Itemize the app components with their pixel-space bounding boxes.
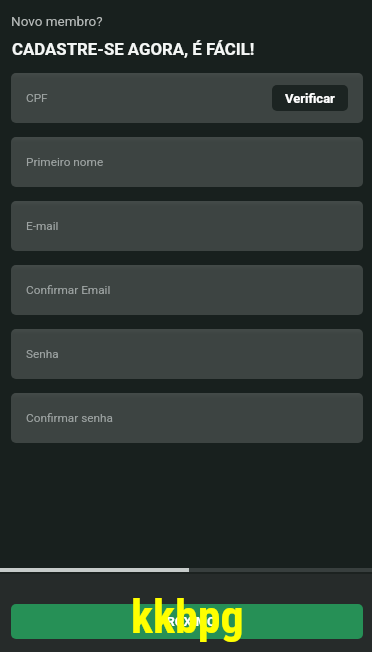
staticText: PRÓXIMO [158, 614, 216, 629]
staticText: CADASTRE-SE AGORA, É FÁCIL! [12, 39, 255, 59]
button[interactable]: Verificar [272, 85, 348, 111]
button[interactable]: PRÓXIMO [11, 604, 363, 639]
button[interactable]: E-mail [11, 201, 363, 251]
button[interactable]: Confirmar Email [11, 265, 363, 315]
button[interactable]: CPF [11, 73, 363, 123]
staticText: Primeiro nome [26, 155, 104, 169]
button[interactable]: Confirmar senha [11, 393, 363, 443]
staticText: kkbpg [131, 590, 244, 644]
staticText: Confirmar senha [26, 411, 113, 425]
staticText: Novo membro? [11, 13, 103, 29]
staticText: CPF [26, 91, 48, 105]
button[interactable]: Primeiro nome [11, 137, 363, 187]
staticText: Confirmar Email [26, 283, 111, 297]
staticText: Verificar [285, 91, 335, 106]
staticText: E-mail [26, 219, 59, 233]
staticText: Senha [26, 347, 59, 361]
button[interactable]: Senha [11, 329, 363, 379]
